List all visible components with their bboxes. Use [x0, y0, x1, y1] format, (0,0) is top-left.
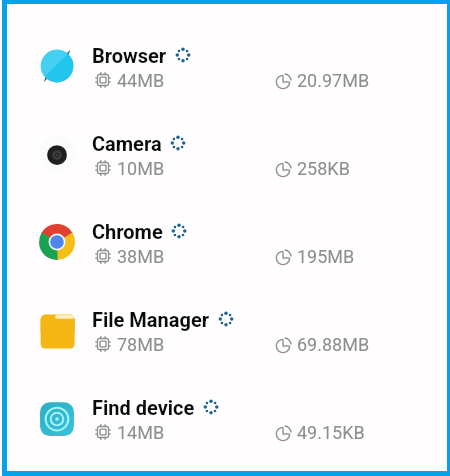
staticText: 14MB	[117, 422, 165, 443]
staticText: 258KB	[297, 158, 350, 179]
button[interactable]: Chrome	[7, 198, 447, 286]
staticText: 44MB	[117, 70, 165, 91]
staticText: Chrome	[92, 220, 163, 243]
staticText: 38MB	[117, 246, 165, 267]
staticText: Browser	[92, 44, 167, 67]
staticText: 78MB	[117, 334, 165, 355]
button[interactable]: Camera	[7, 110, 447, 198]
button[interactable]: Find device	[7, 374, 447, 462]
staticText: 20.97MB	[297, 70, 370, 91]
button[interactable]: File Manager	[7, 286, 447, 374]
staticText: Find device	[92, 396, 195, 419]
button[interactable]: Browser	[7, 22, 447, 110]
staticText: File Manager	[92, 308, 210, 331]
staticText: 69.88MB	[297, 334, 370, 355]
staticText: 195MB	[297, 246, 355, 267]
staticText: 10MB	[117, 158, 165, 179]
staticText: Camera	[92, 132, 162, 155]
staticText: 49.15KB	[297, 422, 365, 443]
